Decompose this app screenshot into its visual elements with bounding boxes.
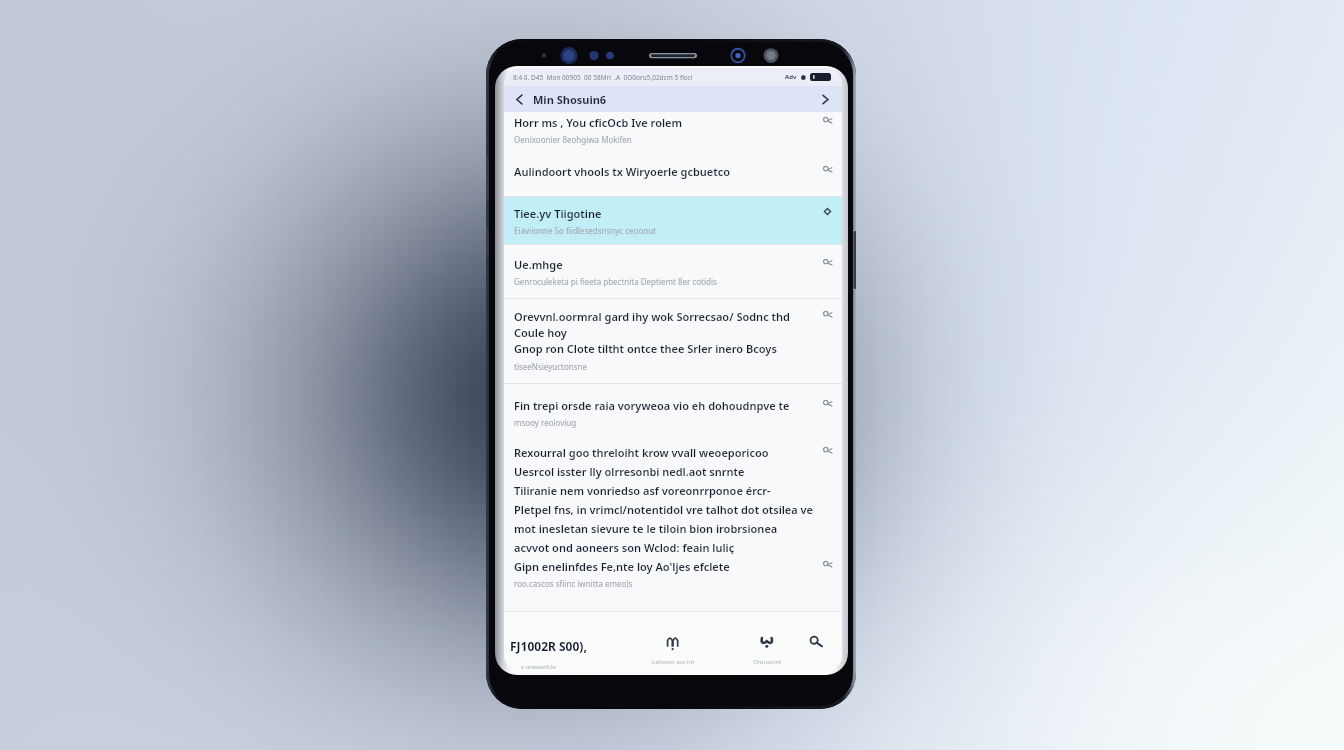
staticText: Aulindoort vhools tx Wiryoerle gcbuetco (514, 164, 731, 179)
staticText: Oenixoonier 8eohgiwa Mokifen (514, 134, 632, 145)
staticText: 8:4 0. D45 Mon 00905 00 58Mri .A 0O0oru5… (513, 73, 693, 82)
staticText: Tiee.yv Tiigotine (514, 206, 602, 221)
button[interactable]: Row action (820, 307, 835, 322)
button[interactable]: Row action (820, 255, 835, 270)
staticText: msooy reoloviug (514, 417, 577, 428)
button[interactable]: Gipn enelinfdes Fe,nte loy Ao'ljes efcle… (504, 554, 842, 595)
button[interactable]: Row action (820, 113, 835, 128)
staticText: Gipn enelinfdes Fe,nte loy Ao'ljes efcle… (514, 559, 730, 574)
button[interactable]: Lshoom soc int (637, 633, 709, 672)
button[interactable]: FJ1002R S00), (510, 638, 602, 671)
button[interactable]: Rexourral goo threloiht krow vvall weoep… (504, 433, 842, 554)
button[interactable]: Row action (820, 204, 835, 219)
staticText: Genroculeketa pi fieeta pbectnita Deptie… (514, 276, 717, 287)
staticText: FJ1002R S00), (510, 638, 587, 654)
button[interactable]: Back (511, 91, 527, 107)
button[interactable]: Ue.mhge (504, 245, 842, 298)
staticText: Adv (785, 73, 797, 81)
staticText: Rexourral goo threloiht krow vvall weoep… (514, 445, 814, 554)
button[interactable]: Tiee.yv Tiigotine (504, 197, 842, 244)
button[interactable]: Search (817, 91, 833, 107)
staticText: roo.cascos sfiinc iwnitta emeo)s (514, 578, 633, 589)
staticText: s uneeorit.le (521, 663, 556, 671)
button[interactable]: Row action (820, 162, 835, 177)
button[interactable]: Row action (820, 557, 835, 572)
staticText: Orevvnl.oormral gard ihy wok Sorrecsao/ … (514, 309, 790, 356)
button[interactable]: Row action (820, 443, 835, 458)
button[interactable]: Fin trepi orsde raia voryweoa vio eh doh… (504, 384, 842, 433)
button[interactable]: Horr ms , You cficOcb Ive rolem (504, 112, 842, 158)
button[interactable]: Aulindoort vhools tx Wiryoerle gcbuetco (504, 158, 842, 196)
button[interactable]: Search (781, 633, 842, 672)
staticText: tiseeNsieyuctonsne (514, 361, 587, 372)
staticText: Fin trepi orsde raia voryweoa vio eh doh… (514, 398, 790, 413)
button[interactable]: Orevvnl.oormral gard ihy wok Sorrecsao/ … (504, 299, 842, 383)
staticText: Eiaviionne 5o fiidlesedsnsnyc ceoonut (514, 225, 657, 236)
button[interactable]: Row action (820, 396, 835, 411)
staticText: Oreusomt (753, 658, 782, 666)
staticText: Ue.mhge (514, 257, 563, 272)
staticText: Min Shosuin6 (533, 92, 607, 107)
staticText: Lshoom soc int (652, 658, 695, 666)
staticText: Horr ms , You cficOcb Ive rolem (514, 115, 683, 130)
button[interactable]: Oreusomt (731, 633, 803, 672)
